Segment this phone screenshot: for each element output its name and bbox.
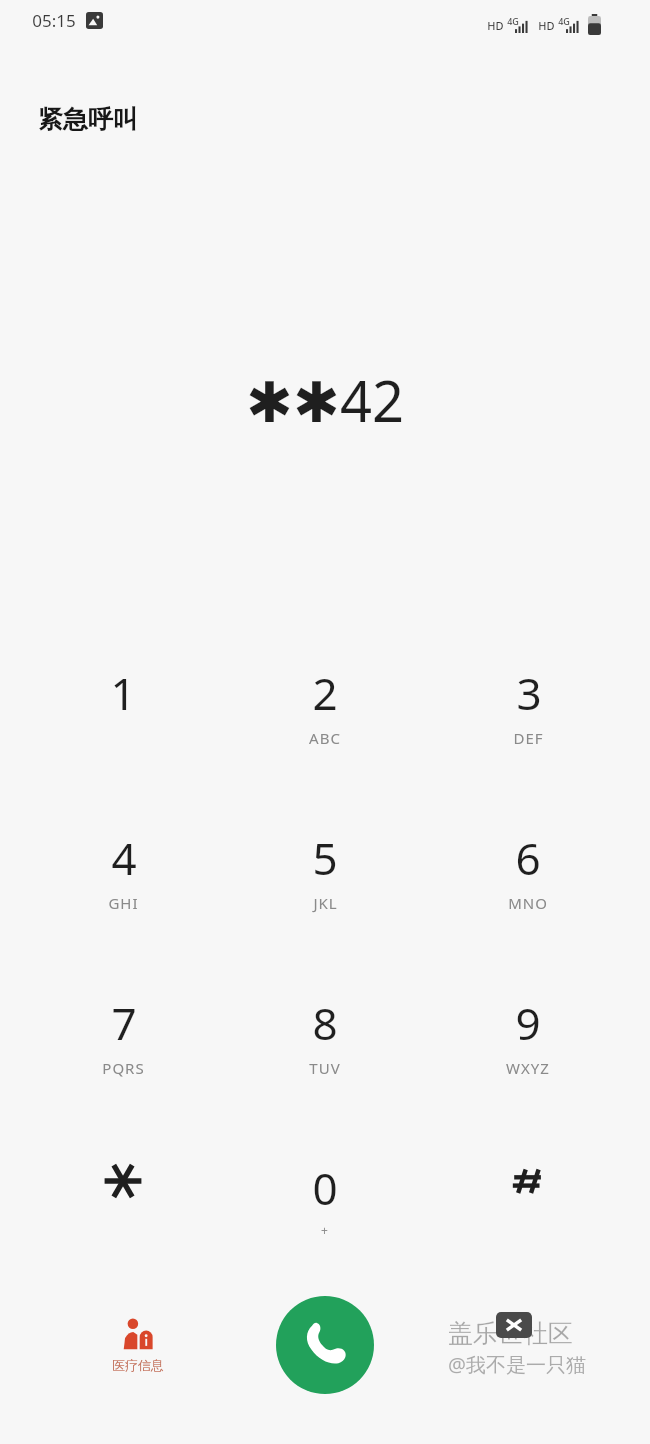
staticText: DEF [513,728,544,748]
staticText: 4G [558,15,570,27]
button[interactable]: 9 [448,975,608,1140]
staticText: 1 [110,663,136,723]
staticText: @我不是一只猫 [448,1351,586,1378]
button[interactable] [448,1140,608,1305]
button[interactable]: 5 [245,810,405,975]
button[interactable]: 0 [245,1140,405,1305]
staticText: ✱✱42 [246,362,404,438]
button[interactable] [43,1140,203,1305]
staticText: JKL [313,893,338,913]
staticText: 5 [312,828,338,888]
button[interactable]: 3 [448,645,608,810]
button[interactable]: 6 [448,810,608,975]
staticText: 0 [312,1158,338,1218]
staticText: 6 [515,828,541,888]
staticText: 05:15 [32,9,76,32]
staticText: TUV [309,1058,341,1078]
button[interactable]: 4 [43,810,203,975]
staticText: 紧急呼叫 [38,104,138,135]
staticText: 4 [111,828,137,888]
staticText: 盖乐世社区 [448,1318,573,1349]
button[interactable]: 1 [43,645,203,810]
button[interactable]: 7 [43,975,203,1140]
button[interactable]: Call [276,1296,374,1394]
staticText: 医疗信息 [112,1357,164,1373]
staticText: ABC [309,728,341,748]
staticText: HD [538,18,555,33]
staticText: GHI [108,893,139,913]
button[interactable]: 2 [245,645,405,810]
staticText: 8 [312,993,338,1053]
staticText: WXYZ [506,1058,550,1078]
staticText: + [321,1222,329,1238]
staticText: PQRS [102,1058,145,1078]
staticText: 9 [515,993,541,1053]
staticText: HD [487,18,504,33]
staticText: 2 [312,663,338,723]
staticText: MNO [508,893,548,913]
button[interactable]: 医疗信息 [88,1313,188,1377]
button[interactable]: 8 [245,975,405,1140]
staticText: 4G [507,15,519,27]
staticText: 3 [516,663,542,723]
staticText: 7 [111,993,137,1053]
